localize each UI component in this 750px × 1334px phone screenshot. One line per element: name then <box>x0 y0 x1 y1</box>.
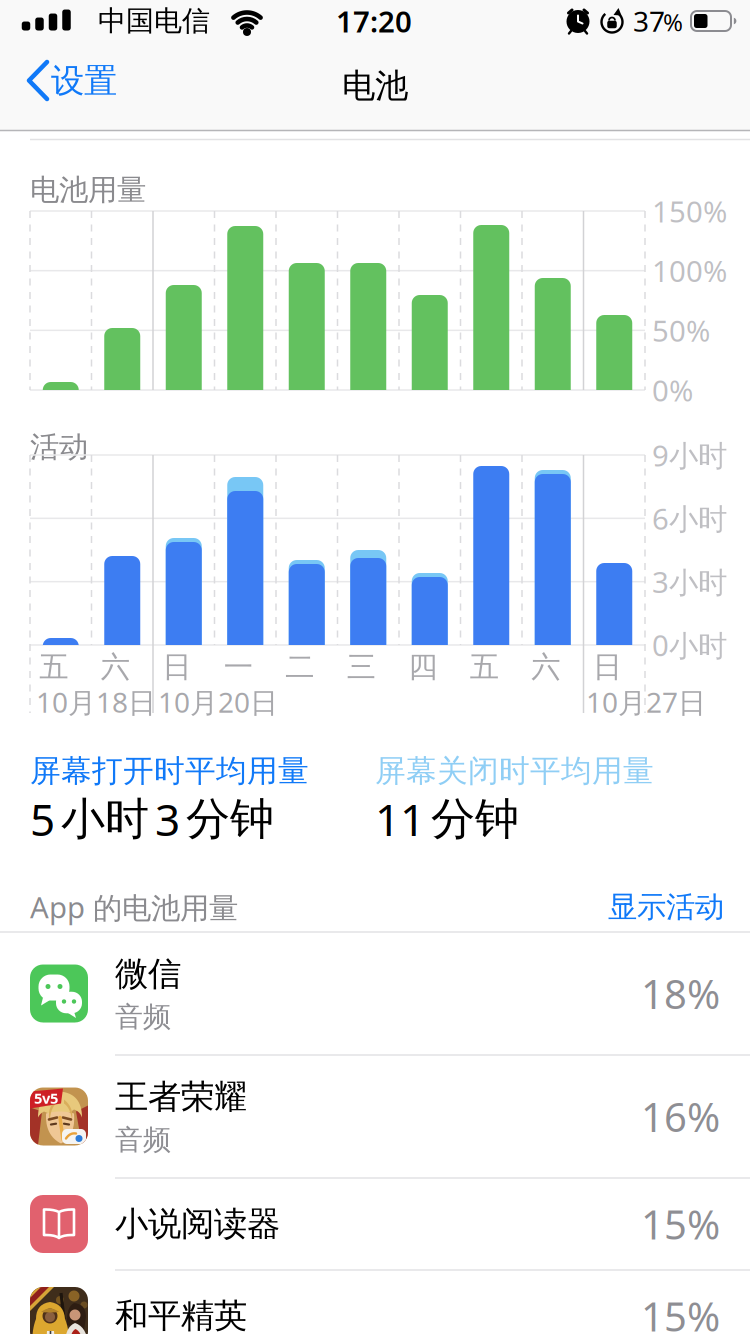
staticText: 10月20日 <box>158 683 278 721</box>
staticText: 屏幕关闭时平均用量 <box>375 752 654 790</box>
staticText: 三 <box>347 649 376 685</box>
button[interactable]: 设置 <box>25 40 185 131</box>
staticText: 分钟 <box>186 792 274 846</box>
button[interactable]: 显示活动 <box>564 882 724 932</box>
staticText: 六 <box>531 649 560 685</box>
staticText: 9小时 <box>652 435 727 474</box>
staticText: 18% <box>641 967 720 1020</box>
staticText: 中国电信 <box>98 4 210 38</box>
staticText: 50% <box>652 311 710 350</box>
staticText: 音频 <box>115 1123 171 1157</box>
staticText: 屏幕打开时平均用量 <box>30 752 309 790</box>
staticText: 电池用量 <box>30 172 146 208</box>
staticText: 11 <box>375 790 425 848</box>
staticText: 活动 <box>30 429 88 465</box>
staticText: 六 <box>101 649 130 685</box>
staticText: 5v5 <box>34 1088 58 1108</box>
button[interactable]: 和平精英 <box>0 1270 750 1334</box>
staticText: 设置 <box>51 60 117 101</box>
staticText: 五 <box>470 649 499 685</box>
staticText: 37 <box>633 2 665 40</box>
staticText: 王者荣耀 <box>115 1076 247 1117</box>
staticText: 音频 <box>115 1000 171 1034</box>
staticText: 电池 <box>342 65 408 106</box>
staticText: 小时 <box>61 792 149 846</box>
staticText: 日 <box>162 649 191 685</box>
staticText: 10月27日 <box>586 683 706 721</box>
staticText: 小说阅读器 <box>115 1203 280 1244</box>
staticText: 微信 <box>115 953 181 994</box>
staticText: 15% <box>641 1197 720 1250</box>
staticText: % <box>663 6 683 38</box>
staticText: 150% <box>652 191 727 230</box>
staticText: 分钟 <box>431 792 519 846</box>
staticText: 一 <box>224 649 253 685</box>
staticText: 17:20 <box>336 1 412 40</box>
staticText: 和平精英 <box>115 1295 247 1334</box>
staticText: App 的电池用量 <box>30 887 238 926</box>
button[interactable]: 5v5 <box>0 1055 750 1178</box>
button[interactable]: 微信 <box>0 932 750 1055</box>
staticText: 10月18日 <box>36 683 156 721</box>
staticText: 五 <box>39 649 68 685</box>
staticText: 3 <box>155 790 180 848</box>
staticText: 16% <box>641 1090 720 1143</box>
staticText: 0小时 <box>652 625 727 664</box>
staticText: 100% <box>652 251 727 290</box>
staticText: 3小时 <box>652 562 727 601</box>
staticText: 0% <box>652 370 693 409</box>
button[interactable]: 小说阅读器 <box>0 1178 750 1270</box>
staticText: 二 <box>285 649 314 685</box>
staticText: 显示活动 <box>608 889 724 925</box>
staticText: 四 <box>408 649 437 685</box>
staticText: 15% <box>641 1289 720 1334</box>
staticText: 日 <box>593 649 622 685</box>
staticText: 6小时 <box>652 499 727 538</box>
staticText: 5 <box>30 790 55 848</box>
